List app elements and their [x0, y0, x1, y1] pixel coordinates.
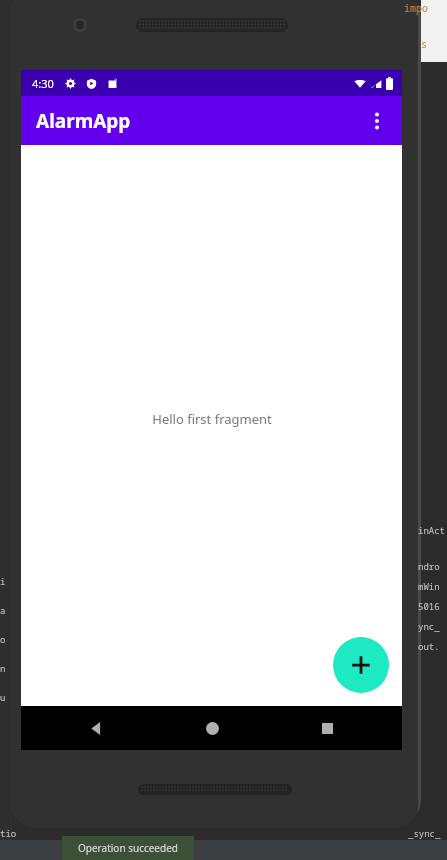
- button[interactable]: Home: [172, 706, 252, 750]
- staticText: o: [0, 633, 6, 645]
- button[interactable]: More options: [356, 100, 398, 142]
- staticText: ndro: [418, 560, 440, 572]
- staticText: ync_: [418, 620, 440, 632]
- staticText: _sync_: [408, 827, 441, 839]
- staticText: tio: [0, 827, 17, 839]
- staticText: Hello first fragment: [152, 410, 272, 428]
- staticText: s: [421, 37, 427, 51]
- staticText: out.: [418, 640, 440, 652]
- staticText: u: [0, 691, 6, 703]
- button[interactable]: Recent apps: [287, 706, 367, 750]
- staticText: 5016: [418, 600, 440, 612]
- button[interactable]: Back: [56, 706, 136, 750]
- staticText: AlarmApp: [36, 108, 131, 134]
- staticText: Operation succeeded: [78, 841, 178, 855]
- staticText: impo: [404, 1, 428, 15]
- staticText: mWin: [418, 580, 440, 592]
- staticText: a: [0, 604, 6, 616]
- staticText: i: [0, 575, 6, 587]
- button[interactable]: Add alarm: [333, 637, 389, 693]
- staticText: n: [0, 662, 6, 674]
- staticText: inAct: [418, 524, 446, 536]
- staticText: 4:30: [32, 76, 54, 91]
